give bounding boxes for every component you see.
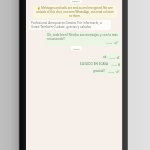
button[interactable]: 🔒 Messages and calls are end-to-end encr… [33,5,117,18]
staticText: 10:30 [109,56,116,59]
staticText: ok [103,55,107,59]
button[interactable]: Profesional Aeropuerto Gracias Por infor… [29,20,111,30]
other: Read receipt [117,56,119,59]
staticText: Today [73,47,80,50]
staticText: 🔒 Messages and calls are end-to-end encr… [35,6,115,17]
button[interactable]: TODAY [70,0,82,3]
button[interactable]: ok [101,54,121,60]
staticText: Profesional Aeropuerto Gracias Por infor… [31,21,109,29]
other: Read receipt [114,41,118,44]
staticText: TODAY [72,0,80,2]
button[interactable]: gracias!! [91,68,121,74]
staticText: ELEGIDO EN ECASA [80,62,109,66]
other: Read receipt [116,70,119,73]
button[interactable]: ELEGIDO EN ECASA [78,61,121,67]
staticText: 10:30 [106,41,113,44]
staticText: Ok, todo bien!! Recibo sus mensajes y co… [47,33,118,41]
button[interactable]: Today [71,46,82,51]
staticText: 10:30 [108,70,115,73]
button[interactable]: Ok, todo bien!! Recibo sus mensajes y co… [45,32,120,46]
staticText: gracias!! [93,69,106,73]
staticText: 10:30 [111,63,118,66]
